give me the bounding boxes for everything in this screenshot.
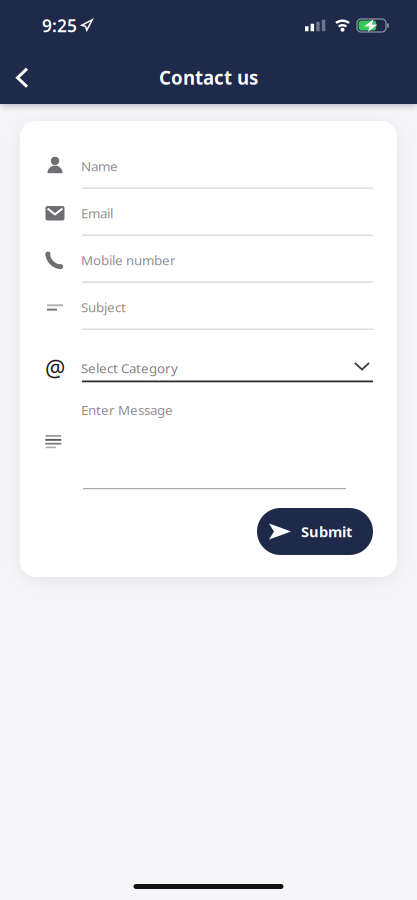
staticText: Mobile number <box>81 251 176 269</box>
staticText: 9:25 <box>42 14 77 37</box>
staticText: Contact us <box>159 65 258 90</box>
button[interactable]: @ <box>45 358 373 382</box>
staticText: Enter Message <box>81 401 173 419</box>
button[interactable]: Name <box>45 156 373 189</box>
staticText: Select Category <box>81 359 178 377</box>
staticText: @ <box>45 353 65 383</box>
button[interactable]: Subject <box>45 297 373 330</box>
staticText: Name <box>81 157 118 175</box>
staticText: Submit <box>301 522 352 541</box>
button[interactable]: Email <box>45 203 373 236</box>
staticText: Subject <box>81 298 126 316</box>
button[interactable]: Submit <box>257 508 373 555</box>
button[interactable]: Enter Message <box>45 402 373 490</box>
button[interactable]: Mobile number <box>45 250 373 283</box>
button[interactable] <box>0 65 49 86</box>
staticText: Email <box>81 204 113 222</box>
